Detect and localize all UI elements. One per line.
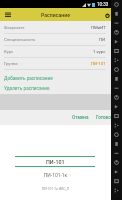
staticText: ПИ-101-1к ИВС,,Л [0,187,111,191]
button[interactable]: Отмена [69,113,92,122]
button[interactable]: Open navigation menu [2,9,13,20]
staticText: Специальность [4,37,36,42]
staticText: Курс [4,49,14,54]
staticText: Удалить расписание [4,86,50,92]
button[interactable]: Готово [93,113,114,122]
staticText: 10:33 [97,2,109,7]
staticText: ПИ-101 [46,159,65,165]
button[interactable]: Курс [0,46,122,58]
staticText: Расписание [41,12,71,18]
button[interactable]: Удалить расписание [0,84,122,94]
button[interactable]: Группа [0,58,122,70]
button[interactable]: Специальность [0,34,122,46]
staticText: ПИ-101 [91,61,106,66]
staticText: ПИ-101-1к [0,172,111,178]
button[interactable]: Добавить расписание [0,73,122,84]
button[interactable]: Факультет [0,22,122,34]
staticText: Готово [96,115,111,120]
staticText: Добавить расписание [4,76,53,82]
staticText: 1 курс [93,49,106,54]
other: Emulator controls [111,0,122,200]
button[interactable]: Refresh [103,11,111,19]
staticText: Группа [4,61,18,66]
staticText: ПИ [99,37,106,42]
staticText: ПМиИТ [91,25,106,30]
staticText: Факультет [4,25,25,30]
staticText: Отмена [72,115,89,120]
